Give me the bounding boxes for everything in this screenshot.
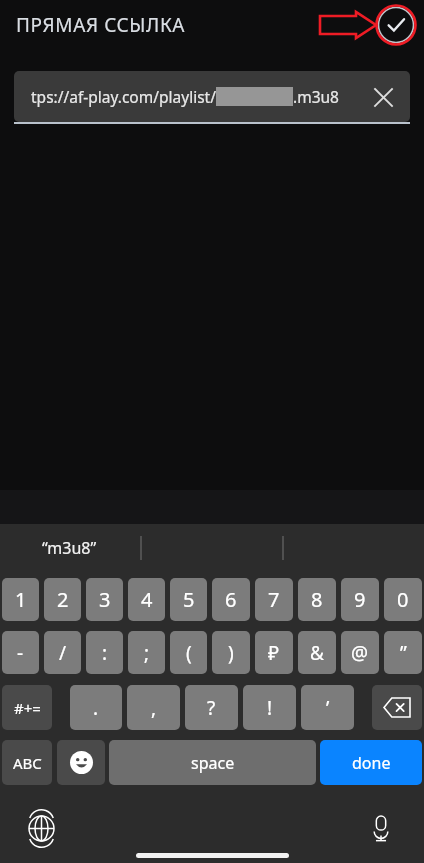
button[interactable]: #+= [2, 685, 52, 730]
button[interactable]: 9 [341, 578, 379, 621]
button[interactable]: Confirm [377, 6, 415, 44]
button[interactable]: ( [170, 631, 207, 674]
button[interactable]: Backspace [372, 685, 422, 730]
staticText: , [151, 695, 157, 721]
staticText: ? [207, 695, 216, 721]
staticText: 7 [268, 586, 280, 613]
staticText: : [102, 640, 108, 666]
button[interactable]: 5 [170, 578, 207, 621]
button[interactable]: ’ [301, 685, 354, 730]
staticText: 8 [311, 586, 323, 613]
button[interactable]: ABC [2, 740, 52, 785]
button[interactable]: , [127, 685, 180, 730]
button[interactable]: 0 [384, 578, 422, 621]
button[interactable]: 6 [212, 578, 250, 621]
button[interactable]: Switch keyboard language [24, 811, 58, 845]
staticText: ’ [326, 695, 330, 721]
button[interactable]: 2 [44, 578, 81, 621]
staticText: ) [228, 640, 234, 666]
staticText: 4 [141, 586, 153, 613]
staticText: ₽ [268, 640, 280, 666]
staticText: ; [144, 640, 150, 666]
staticText: ABC [13, 753, 42, 773]
button[interactable]: ? [185, 685, 238, 730]
button[interactable]: / [44, 631, 81, 674]
staticText: ПРЯМАЯ ССЫЛКА [16, 12, 186, 38]
button[interactable]: Emoji [57, 740, 105, 785]
staticText: ( [186, 640, 192, 666]
button[interactable]: done [320, 740, 422, 785]
staticText: done [352, 752, 391, 774]
staticText: 5 [183, 586, 195, 613]
button[interactable]: Clear text [366, 80, 400, 114]
button[interactable]: . [70, 685, 122, 730]
staticText: 3 [99, 586, 111, 613]
staticText: 9 [354, 586, 366, 613]
staticText: 2 [57, 586, 69, 613]
staticText: 0 [397, 586, 409, 613]
button[interactable]: ПРЯМАЯ ССЫЛКА [16, 12, 186, 38]
button[interactable]: ; [128, 631, 165, 674]
button[interactable]: space [109, 740, 316, 785]
staticText: #+= [14, 698, 41, 718]
staticText: ! [267, 695, 273, 721]
button[interactable]: “m3u8” [42, 537, 97, 559]
staticText: / [59, 640, 67, 666]
staticText: - [17, 640, 24, 666]
staticText: 1 [15, 586, 27, 613]
button[interactable]: Voice input [364, 811, 398, 845]
staticText: ” [400, 640, 407, 666]
staticText: space [191, 752, 235, 774]
button[interactable]: 4 [128, 578, 165, 621]
button[interactable]: 8 [298, 578, 336, 621]
button[interactable]: : [86, 631, 123, 674]
button[interactable]: 1 [2, 578, 39, 621]
staticText: 6 [225, 586, 237, 613]
staticText: tps://af-play.com/playlist/ [31, 86, 216, 107]
staticText: .m3u8 [293, 86, 339, 107]
staticText: & [310, 640, 324, 666]
button[interactable]: @ [341, 631, 379, 674]
staticText: . [93, 695, 99, 721]
button[interactable]: & [298, 631, 336, 674]
button[interactable]: ! [243, 685, 296, 730]
button[interactable]: tps://af-play.com/playlist/ [14, 71, 410, 122]
staticText: @ [351, 640, 369, 666]
button[interactable]: 7 [255, 578, 293, 621]
button[interactable]: ₽ [255, 631, 293, 674]
button[interactable]: ” [384, 631, 422, 674]
button[interactable]: 3 [86, 578, 123, 621]
button[interactable]: - [2, 631, 39, 674]
button[interactable]: ) [212, 631, 250, 674]
